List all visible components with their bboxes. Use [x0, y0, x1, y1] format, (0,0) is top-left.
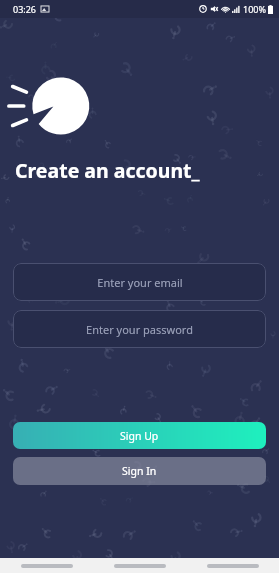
button[interactable]: Recents: [21, 564, 73, 568]
staticText: Sign In: [122, 464, 157, 478]
staticText: 100%: [243, 3, 266, 15]
staticText: Create an account_: [15, 157, 200, 184]
other: App logo: [16, 75, 94, 137]
button[interactable]: Sign In: [13, 457, 266, 485]
staticText: Sign Up: [120, 429, 159, 443]
staticText: Enter your email: [97, 275, 183, 290]
button[interactable]: Home: [114, 564, 166, 568]
button[interactable]: Back: [207, 564, 259, 568]
staticText: 03:26: [13, 3, 37, 15]
button[interactable]: Enter your email: [13, 263, 266, 301]
staticText: Enter your password: [86, 322, 193, 337]
button[interactable]: Enter your password: [13, 310, 266, 348]
button[interactable]: Sign Up: [13, 422, 266, 449]
